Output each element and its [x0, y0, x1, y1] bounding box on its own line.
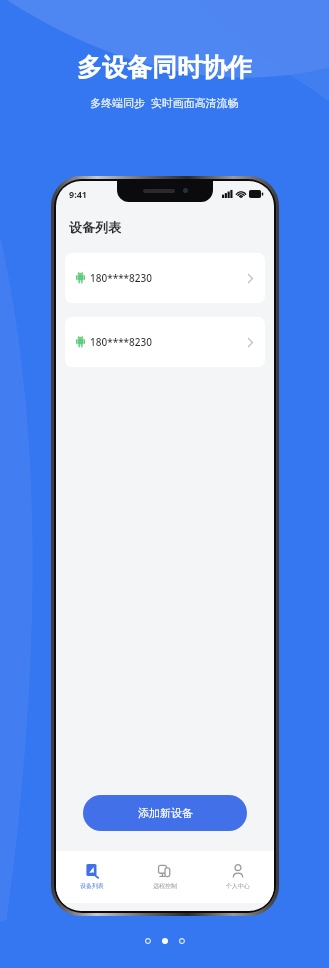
- staticText: 180****8230: [90, 271, 152, 285]
- staticText: 添加新设备: [138, 806, 193, 820]
- staticText: 个人中心: [226, 882, 250, 890]
- button[interactable]: 设备列表: [56, 851, 128, 903]
- staticText: 180****8230: [90, 335, 152, 349]
- staticText: 多设备同时协作: [77, 52, 252, 83]
- staticText: 远程控制: [153, 882, 177, 890]
- button[interactable]: 180****8230: [65, 253, 265, 303]
- staticText: 多终端同步 实时画面高清流畅: [90, 95, 239, 110]
- button[interactable]: 添加新设备: [83, 795, 247, 831]
- button[interactable]: 远程控制: [128, 851, 201, 903]
- staticText: 9:41: [69, 188, 87, 200]
- button[interactable]: 180****8230: [65, 317, 265, 367]
- staticText: 设备列表: [80, 882, 104, 890]
- staticText: 设备列表: [69, 219, 121, 235]
- button[interactable]: 个人中心: [201, 851, 274, 903]
